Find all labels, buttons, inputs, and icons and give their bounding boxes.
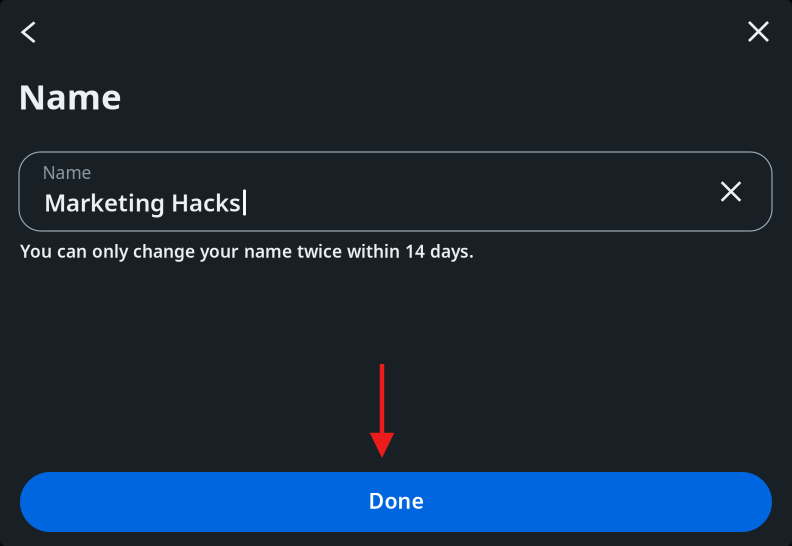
button[interactable]: Done — [20, 472, 772, 532]
staticText: You can only change your name twice with… — [20, 239, 474, 262]
button[interactable]: Close — [734, 7, 782, 55]
staticText: Name — [18, 73, 122, 119]
staticText: Name — [42, 161, 91, 184]
staticText: Marketing Hacks — [44, 186, 241, 218]
button[interactable]: Back — [5, 8, 53, 56]
button[interactable]: Clear text — [709, 169, 753, 213]
staticText: Done — [368, 486, 423, 515]
button[interactable]: Name — [19, 152, 772, 231]
